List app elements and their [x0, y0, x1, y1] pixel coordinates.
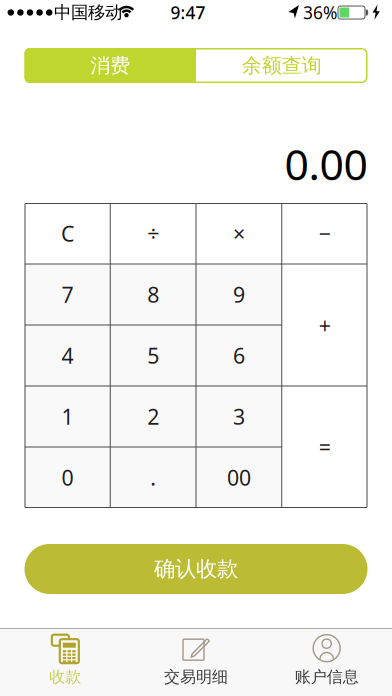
staticText: .: [150, 463, 156, 492]
staticText: ÷: [147, 219, 159, 248]
button[interactable]: .: [110, 447, 196, 508]
button[interactable]: 账户信息: [261, 629, 392, 696]
button[interactable]: +: [282, 264, 368, 386]
staticText: 消费: [90, 53, 130, 78]
staticText: 36%: [303, 1, 337, 24]
button[interactable]: ×: [196, 203, 282, 264]
staticText: 1: [61, 402, 73, 431]
button[interactable]: −: [282, 203, 368, 264]
staticText: 00: [227, 463, 251, 492]
button[interactable]: 收款: [0, 629, 131, 696]
staticText: 0.00: [284, 135, 367, 192]
button[interactable]: 7: [24, 264, 110, 325]
staticText: =: [319, 433, 331, 461]
staticText: ×: [233, 219, 245, 248]
staticText: −: [319, 219, 331, 248]
staticText: 收款: [49, 667, 81, 687]
button[interactable]: 5: [110, 325, 196, 386]
button[interactable]: 0: [24, 447, 110, 508]
button[interactable]: 交易明细: [131, 629, 261, 696]
button[interactable]: =: [282, 386, 368, 508]
button[interactable]: 确认收款: [24, 544, 367, 594]
button[interactable]: 00: [196, 447, 282, 508]
button[interactable]: 8: [110, 264, 196, 325]
staticText: 确认收款: [154, 556, 238, 582]
button[interactable]: 消费: [24, 48, 196, 83]
staticText: +: [319, 311, 331, 339]
staticText: 7: [61, 280, 73, 309]
staticText: 6: [233, 341, 245, 370]
staticText: 0: [61, 463, 73, 492]
staticText: 3: [233, 402, 245, 431]
staticText: 4: [61, 341, 73, 370]
staticText: 8: [147, 280, 159, 309]
staticText: 9:47: [170, 1, 205, 24]
staticText: 账户信息: [295, 667, 359, 687]
staticText: 中国移动: [54, 2, 122, 23]
staticText: 余额查询: [242, 53, 322, 78]
staticText: C: [61, 219, 74, 248]
button[interactable]: 余额查询: [196, 48, 367, 83]
button[interactable]: 3: [196, 386, 282, 447]
button[interactable]: 6: [196, 325, 282, 386]
staticText: 9: [233, 280, 245, 309]
button[interactable]: 2: [110, 386, 196, 447]
button[interactable]: 1: [24, 386, 110, 447]
button[interactable]: 9: [196, 264, 282, 325]
staticText: 交易明细: [164, 667, 228, 687]
button[interactable]: C: [24, 203, 110, 264]
button[interactable]: ÷: [110, 203, 196, 264]
staticText: 5: [147, 341, 159, 370]
staticText: 2: [147, 402, 159, 431]
button[interactable]: 4: [24, 325, 110, 386]
